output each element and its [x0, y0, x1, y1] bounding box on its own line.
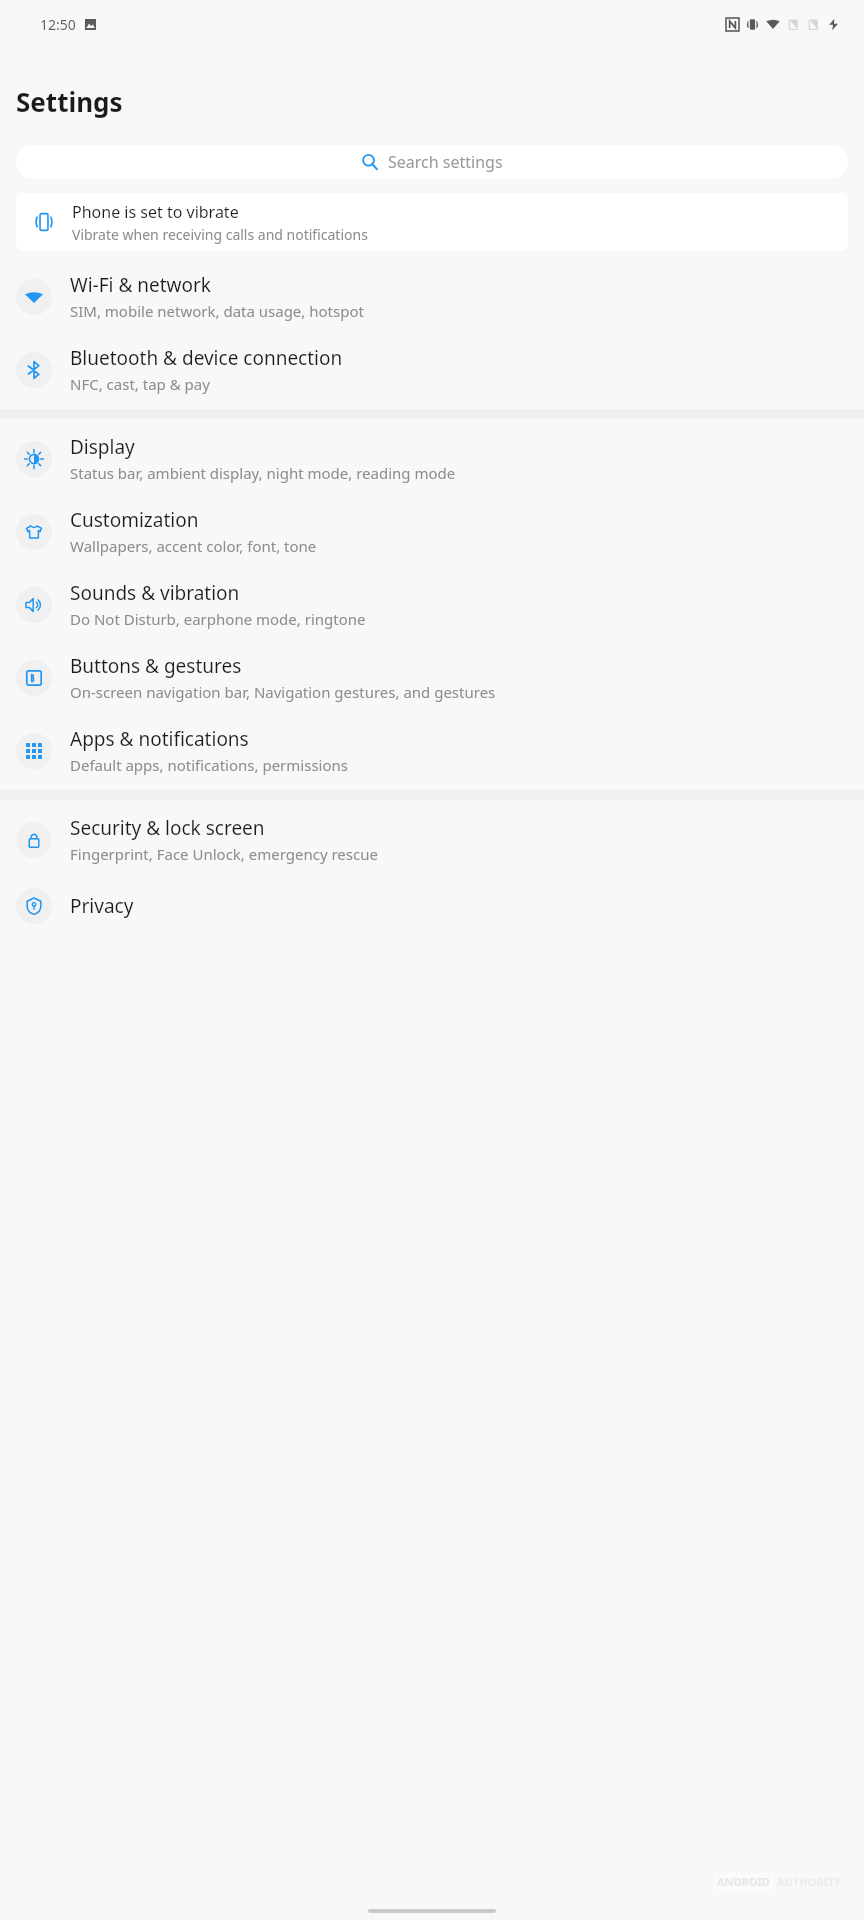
button[interactable]: Apps & notifications — [0, 714, 864, 787]
staticText: Vibrate when receiving calls and notific… — [72, 225, 368, 244]
staticText: Buttons & gestures — [70, 653, 242, 679]
staticText: Security & lock screen — [70, 815, 265, 841]
staticText: 12:50 — [40, 15, 76, 34]
staticText: Fingerprint, Face Unlock, emergency resc… — [70, 844, 378, 864]
staticText: Status bar, ambient display, night mode,… — [70, 463, 456, 483]
button[interactable]: Bluetooth & device connection — [0, 333, 864, 406]
staticText: Phone is set to vibrate — [72, 201, 239, 223]
staticText: On-screen navigation bar, Navigation ges… — [70, 682, 496, 702]
staticText: Bluetooth & device connection — [70, 345, 343, 371]
staticText: Default apps, notifications, permissions — [70, 755, 348, 775]
staticText: AUTHORITY — [777, 1874, 842, 1889]
button[interactable]: Buttons & gestures — [0, 641, 864, 714]
staticText: Wi-Fi & network — [70, 272, 211, 298]
button[interactable]: Customization — [0, 495, 864, 568]
button[interactable]: Security & lock screen — [0, 803, 864, 876]
staticText: Sounds & vibration — [70, 580, 240, 606]
staticText: NFC, cast, tap & pay — [70, 374, 210, 394]
staticText: Settings — [16, 84, 123, 119]
button[interactable]: Search settings — [16, 145, 848, 179]
staticText: Search settings — [388, 151, 503, 173]
staticText: Wallpapers, accent color, font, tone — [70, 536, 317, 556]
button[interactable]: Privacy — [0, 876, 864, 936]
staticText: ANDROID — [717, 1874, 770, 1889]
staticText: Privacy — [70, 893, 134, 919]
button[interactable]: Wi-Fi & network — [0, 260, 864, 333]
button[interactable]: Sounds & vibration — [0, 568, 864, 641]
staticText: Do Not Disturb, earphone mode, ringtone — [70, 609, 366, 629]
button[interactable]: Phone is set to vibrate — [16, 193, 848, 251]
staticText: SIM, mobile network, data usage, hotspot — [70, 301, 364, 321]
staticText: Apps & notifications — [70, 726, 249, 752]
staticText: Customization — [70, 507, 199, 533]
staticText: Display — [70, 434, 135, 460]
button[interactable]: Display — [0, 422, 864, 495]
